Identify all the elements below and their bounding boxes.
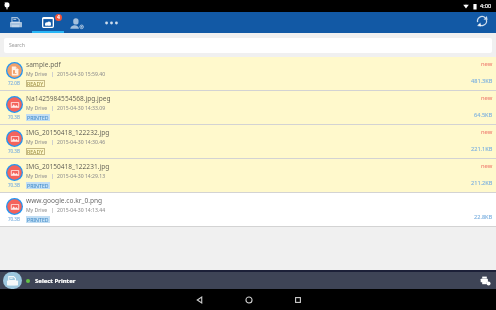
button[interactable]: Search	[4, 38, 492, 53]
button[interactable]: Select Printer	[0, 272, 496, 289]
staticText: IMG_20150418_122231.jpg	[26, 162, 110, 171]
staticText: PRINTED	[27, 182, 49, 189]
staticText: 2015-04-30 14:13.44	[57, 207, 106, 214]
staticText: 4	[57, 14, 60, 21]
staticText: My Drive	[26, 173, 48, 180]
staticText: 70.3B	[8, 216, 20, 222]
staticText: 2015-04-30 14:33.09	[57, 105, 106, 112]
button[interactable]: Add account	[64, 12, 94, 33]
staticText: sample.pdf	[26, 60, 61, 69]
staticText: PRINTED	[27, 114, 49, 121]
button[interactable]: Home	[229, 289, 269, 310]
button[interactable]: Printer settings	[476, 272, 494, 289]
staticText: www.google.co.kr_0.png	[26, 196, 103, 205]
staticText: 22.8KB	[474, 213, 493, 221]
staticText: My Drive	[26, 139, 48, 146]
staticText: 481.3KB	[471, 77, 493, 85]
button[interactable]: More options	[94, 12, 130, 33]
staticText: Na1425984554568.jpg.jpeg	[26, 94, 111, 103]
staticText: 70.3B	[8, 182, 20, 188]
button[interactable]: 70.3B	[0, 159, 496, 192]
staticText: READY	[27, 80, 44, 87]
staticText: Search	[9, 42, 25, 49]
button[interactable]: Cloud files	[32, 12, 64, 33]
staticText: 221.1KB	[471, 145, 493, 153]
staticText: READY	[27, 148, 44, 155]
staticText: PRINTED	[27, 216, 49, 223]
staticText: 4:00	[480, 2, 492, 10]
button[interactable]: 70.3B	[0, 193, 496, 226]
button[interactable]: Recent apps	[278, 289, 318, 310]
button[interactable]: 70.3B	[0, 125, 496, 158]
button[interactable]: Back	[179, 289, 219, 310]
staticText: new	[481, 94, 493, 102]
button[interactable]: 70.3B	[0, 91, 496, 124]
staticText: 2015-04-30 15:59.40	[57, 71, 106, 78]
button[interactable]: Printers	[0, 12, 32, 33]
staticText: new	[481, 128, 493, 136]
staticText: new	[481, 60, 493, 68]
staticText: 64.5KB	[474, 111, 493, 119]
staticText: 2015-04-30 14:30.46	[57, 139, 106, 146]
staticText: My Drive	[26, 207, 48, 214]
staticText: 2015-04-30 14:29.13	[57, 173, 106, 180]
staticText: 211.2KB	[471, 179, 493, 187]
staticText: 70.3B	[8, 148, 20, 154]
staticText: 72.0B	[8, 80, 20, 86]
button[interactable]: Refresh	[464, 12, 496, 33]
button[interactable]: 72.0B	[0, 57, 496, 90]
staticText: new	[481, 162, 493, 170]
staticText: 70.3B	[8, 114, 20, 120]
staticText: My Drive	[26, 71, 48, 78]
staticText: My Drive	[26, 105, 48, 112]
staticText: IMG_20150418_122232.jpg	[26, 128, 110, 137]
staticText: Select Printer	[35, 277, 76, 285]
